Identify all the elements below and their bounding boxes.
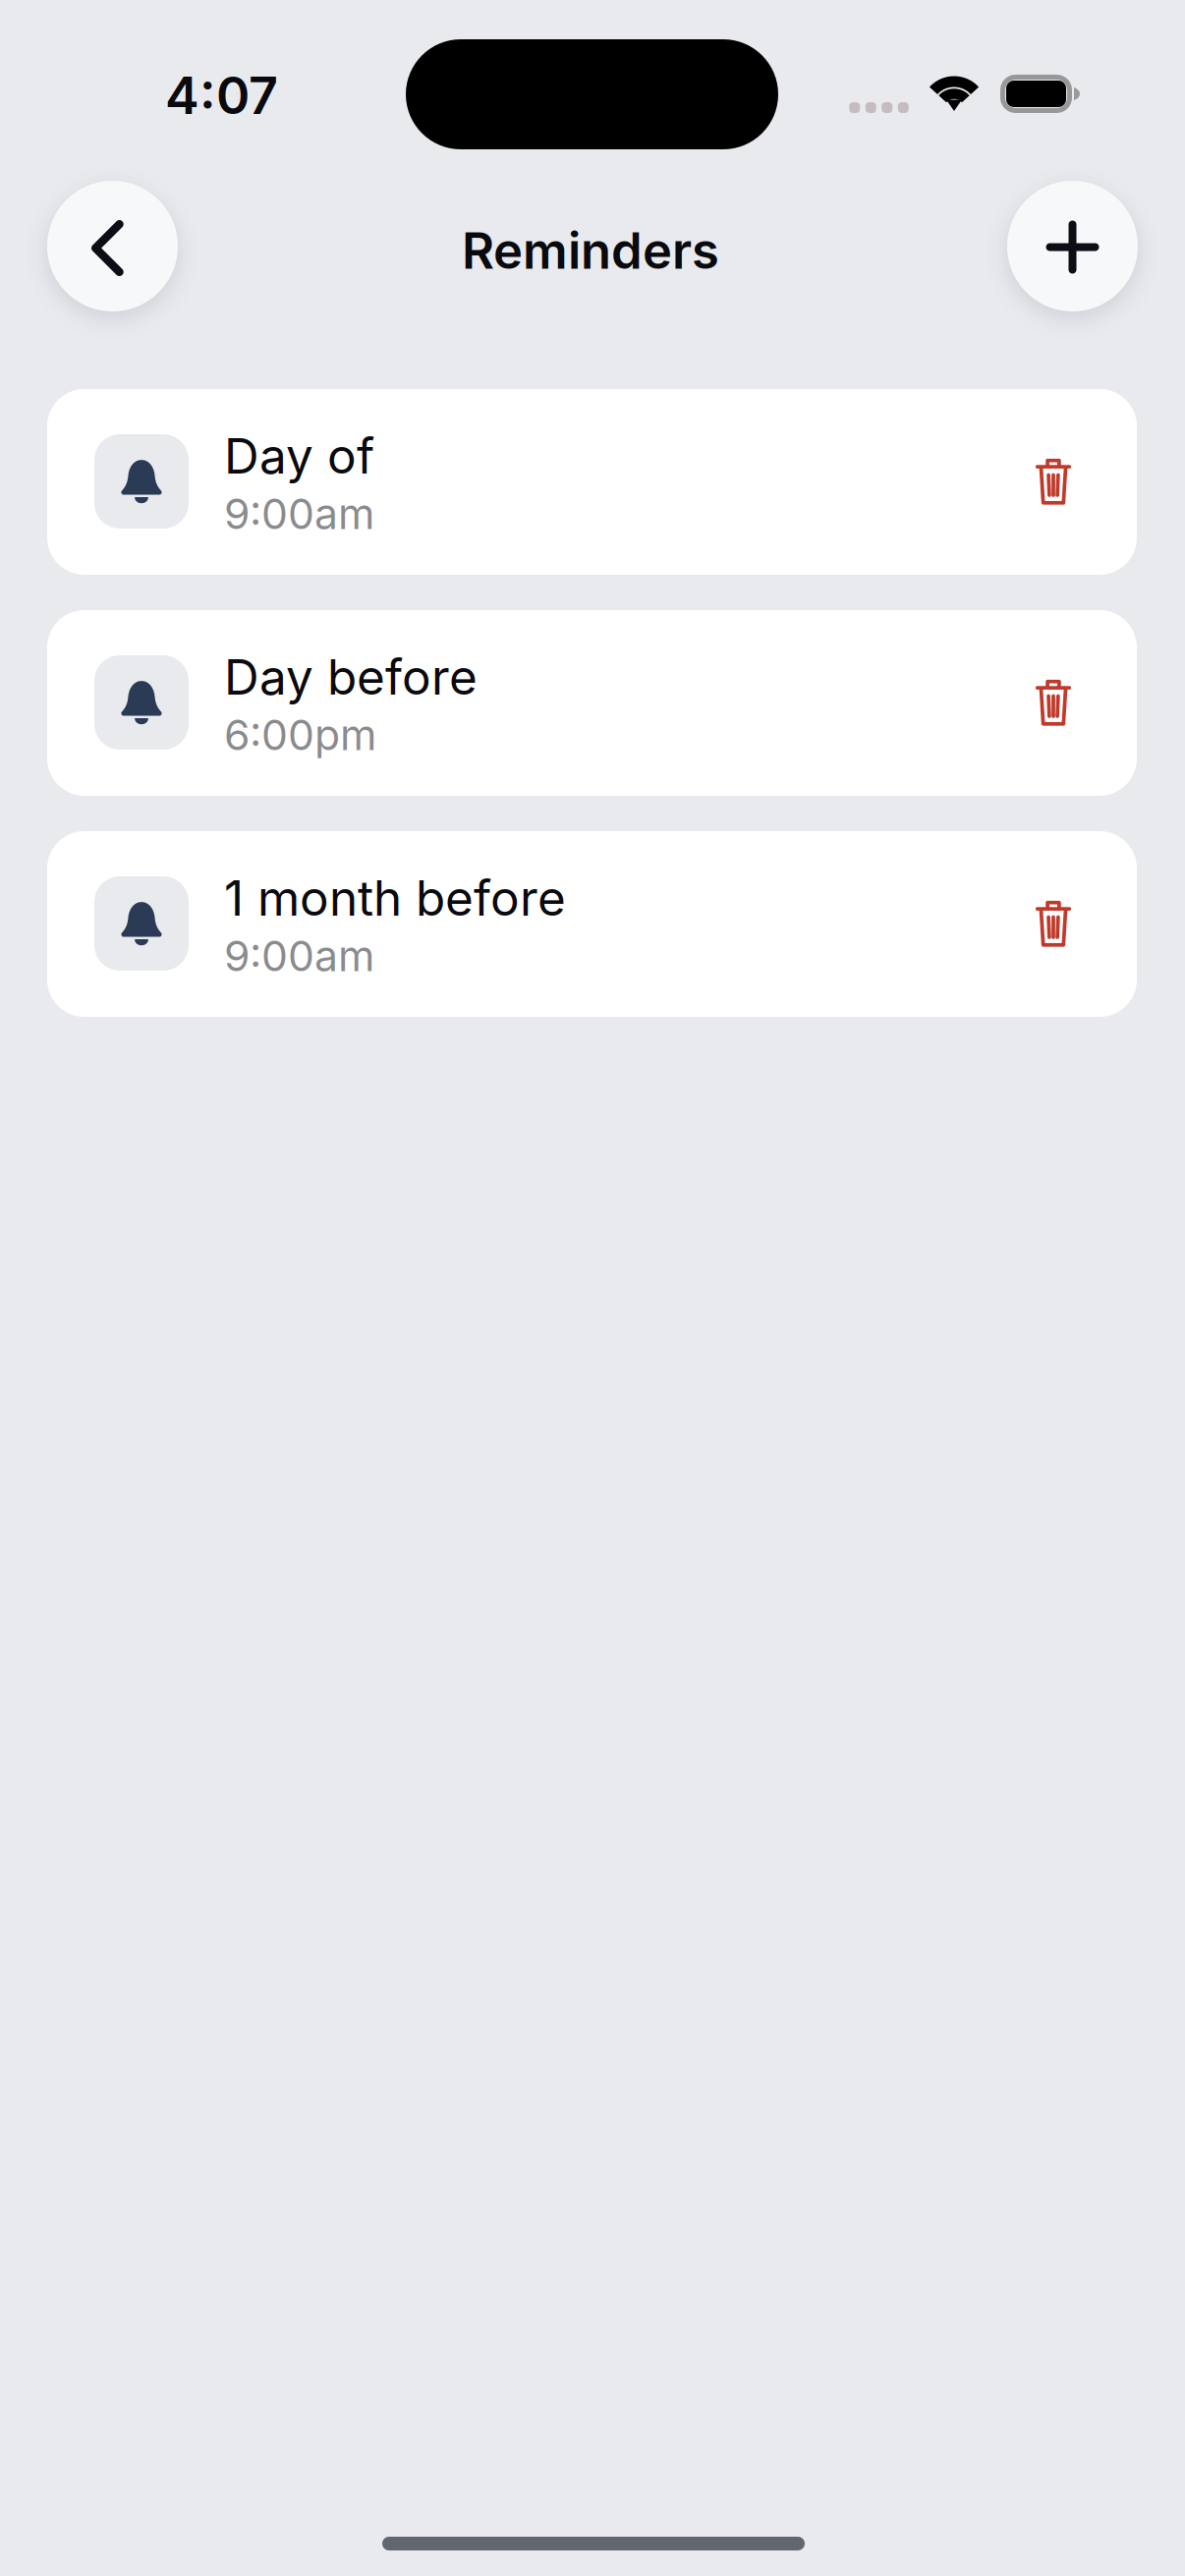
button[interactable]: Delete Day of bbox=[1006, 434, 1100, 529]
staticText: 6:00pm bbox=[224, 710, 376, 760]
button[interactable]: 1 month before bbox=[47, 831, 1137, 1017]
button[interactable]: Delete 1 month before bbox=[1006, 876, 1100, 971]
staticText: Reminders bbox=[462, 220, 719, 281]
button[interactable]: Back bbox=[47, 181, 178, 311]
button[interactable]: Delete Day before bbox=[1006, 655, 1100, 750]
button[interactable]: Day before bbox=[47, 610, 1137, 796]
staticText: 9:00am bbox=[224, 488, 374, 539]
button[interactable]: Add reminder bbox=[1007, 181, 1138, 311]
staticText: Day before bbox=[224, 648, 478, 706]
button[interactable]: Day of bbox=[47, 389, 1137, 575]
staticText: Day of bbox=[224, 427, 374, 485]
staticText: 1 month before bbox=[224, 869, 566, 927]
staticText: 9:00am bbox=[224, 931, 374, 981]
staticText: 4:07 bbox=[165, 64, 278, 126]
